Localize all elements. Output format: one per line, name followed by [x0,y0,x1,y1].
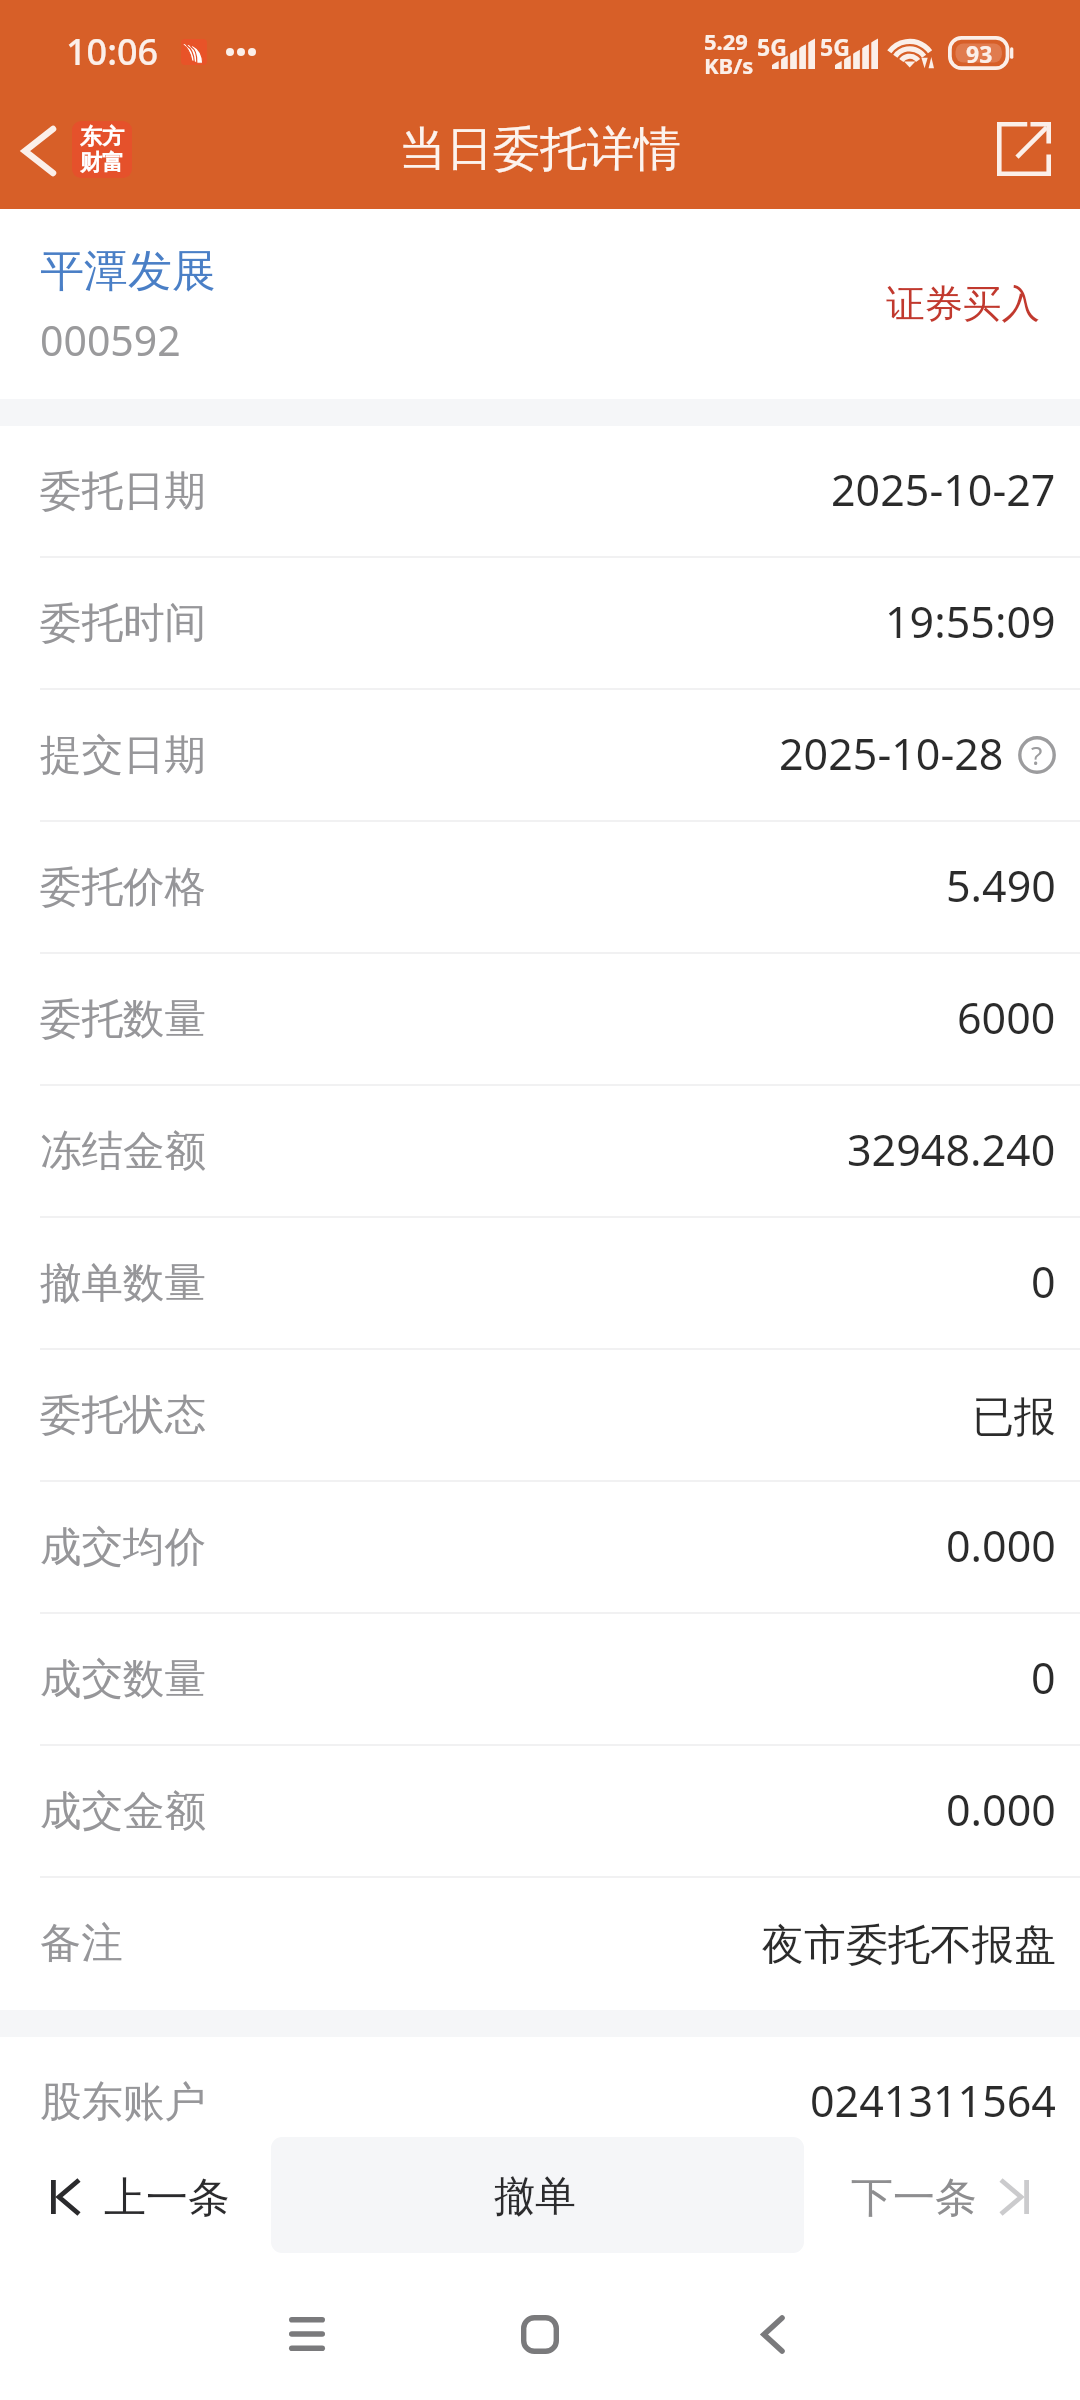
staticText: 10:06 [66,27,159,76]
staticText: 0 [1031,1252,1056,1311]
button[interactable]: 委托价格 [0,822,1080,954]
staticText: 0.000 [946,1780,1056,1839]
staticText: 6000 [957,988,1056,1047]
staticText: 撤单数量 [40,1257,206,1309]
staticText: 下一条 [851,2172,977,2225]
button[interactable]: 委托日期 [0,426,1080,558]
staticText: 成交金额 [40,1785,206,1837]
staticText: 0 [1031,1648,1056,1707]
staticText: 19:55:09 [885,592,1056,651]
staticText: 0241311564 [810,2071,1056,2130]
staticText: 委托状态 [40,1389,206,1441]
button[interactable]: 东方财富 [72,121,132,178]
button[interactable]: 委托时间 [0,558,1080,690]
button[interactable]: 冻结金额 [0,1086,1080,1218]
staticText: 撤单 [494,2171,576,2223]
staticText: 成交数量 [40,1653,206,1705]
staticText: 000592 [40,312,181,368]
staticText: 5G [757,31,787,62]
staticText: 32948.240 [847,1120,1056,1179]
staticText: 成交均价 [40,1521,206,1573]
button[interactable]: 平潭发展 [0,209,216,368]
staticText: 证券买入 [886,280,1040,329]
staticText: 东方 财富 [80,123,124,177]
staticText: 93 [966,38,993,69]
staticText: 委托时间 [40,597,206,649]
button[interactable]: Home [485,2279,595,2389]
button[interactable]: Back [718,2279,828,2389]
staticText: 2025-10-28 [779,724,1004,783]
staticText: 委托日期 [40,465,206,517]
button[interactable]: 委托状态 [0,1350,1080,1482]
staticText: 股东账户 [40,2076,206,2128]
button[interactable]: 下一条 [851,2137,1030,2253]
button[interactable]: 成交金额 [0,1746,1080,1878]
staticText: 已报 [972,1391,1056,1444]
button[interactable]: Recent apps [252,2279,362,2389]
button[interactable]: 上一条 [50,2137,230,2253]
staticText: ? [1031,737,1043,772]
staticText: 5G [820,31,850,62]
button[interactable]: Share [989,114,1059,184]
button[interactable]: 委托数量 [0,954,1080,1086]
staticText: 冻结金额 [40,1125,206,1177]
staticText: 平潭发展 [40,244,216,299]
button[interactable]: 提交日期 [0,690,1080,822]
staticText: 当日委托详情 [399,120,681,179]
staticText: 2025-10-27 [831,460,1056,519]
staticText: 委托数量 [40,993,206,1045]
staticText: 夜市委托不报盘 [762,1919,1056,1972]
button[interactable]: 股东账户 [0,2037,1080,2169]
button[interactable]: 撤单 [271,2137,804,2253]
staticText: 委托价格 [40,861,206,913]
staticText: 上一条 [104,2172,230,2225]
button[interactable]: 成交数量 [0,1614,1080,1746]
staticText: 备注 [40,1917,123,1969]
button[interactable]: 备注 [0,1878,1080,2010]
button[interactable]: 成交均价 [0,1482,1080,1614]
staticText: 5.490 [946,856,1056,915]
staticText: 提交日期 [40,729,206,781]
staticText: 5.29 KB/s [704,26,754,80]
staticText: 0.000 [946,1516,1056,1575]
button[interactable]: Back [0,97,72,201]
button[interactable]: 撤单数量 [0,1218,1080,1350]
